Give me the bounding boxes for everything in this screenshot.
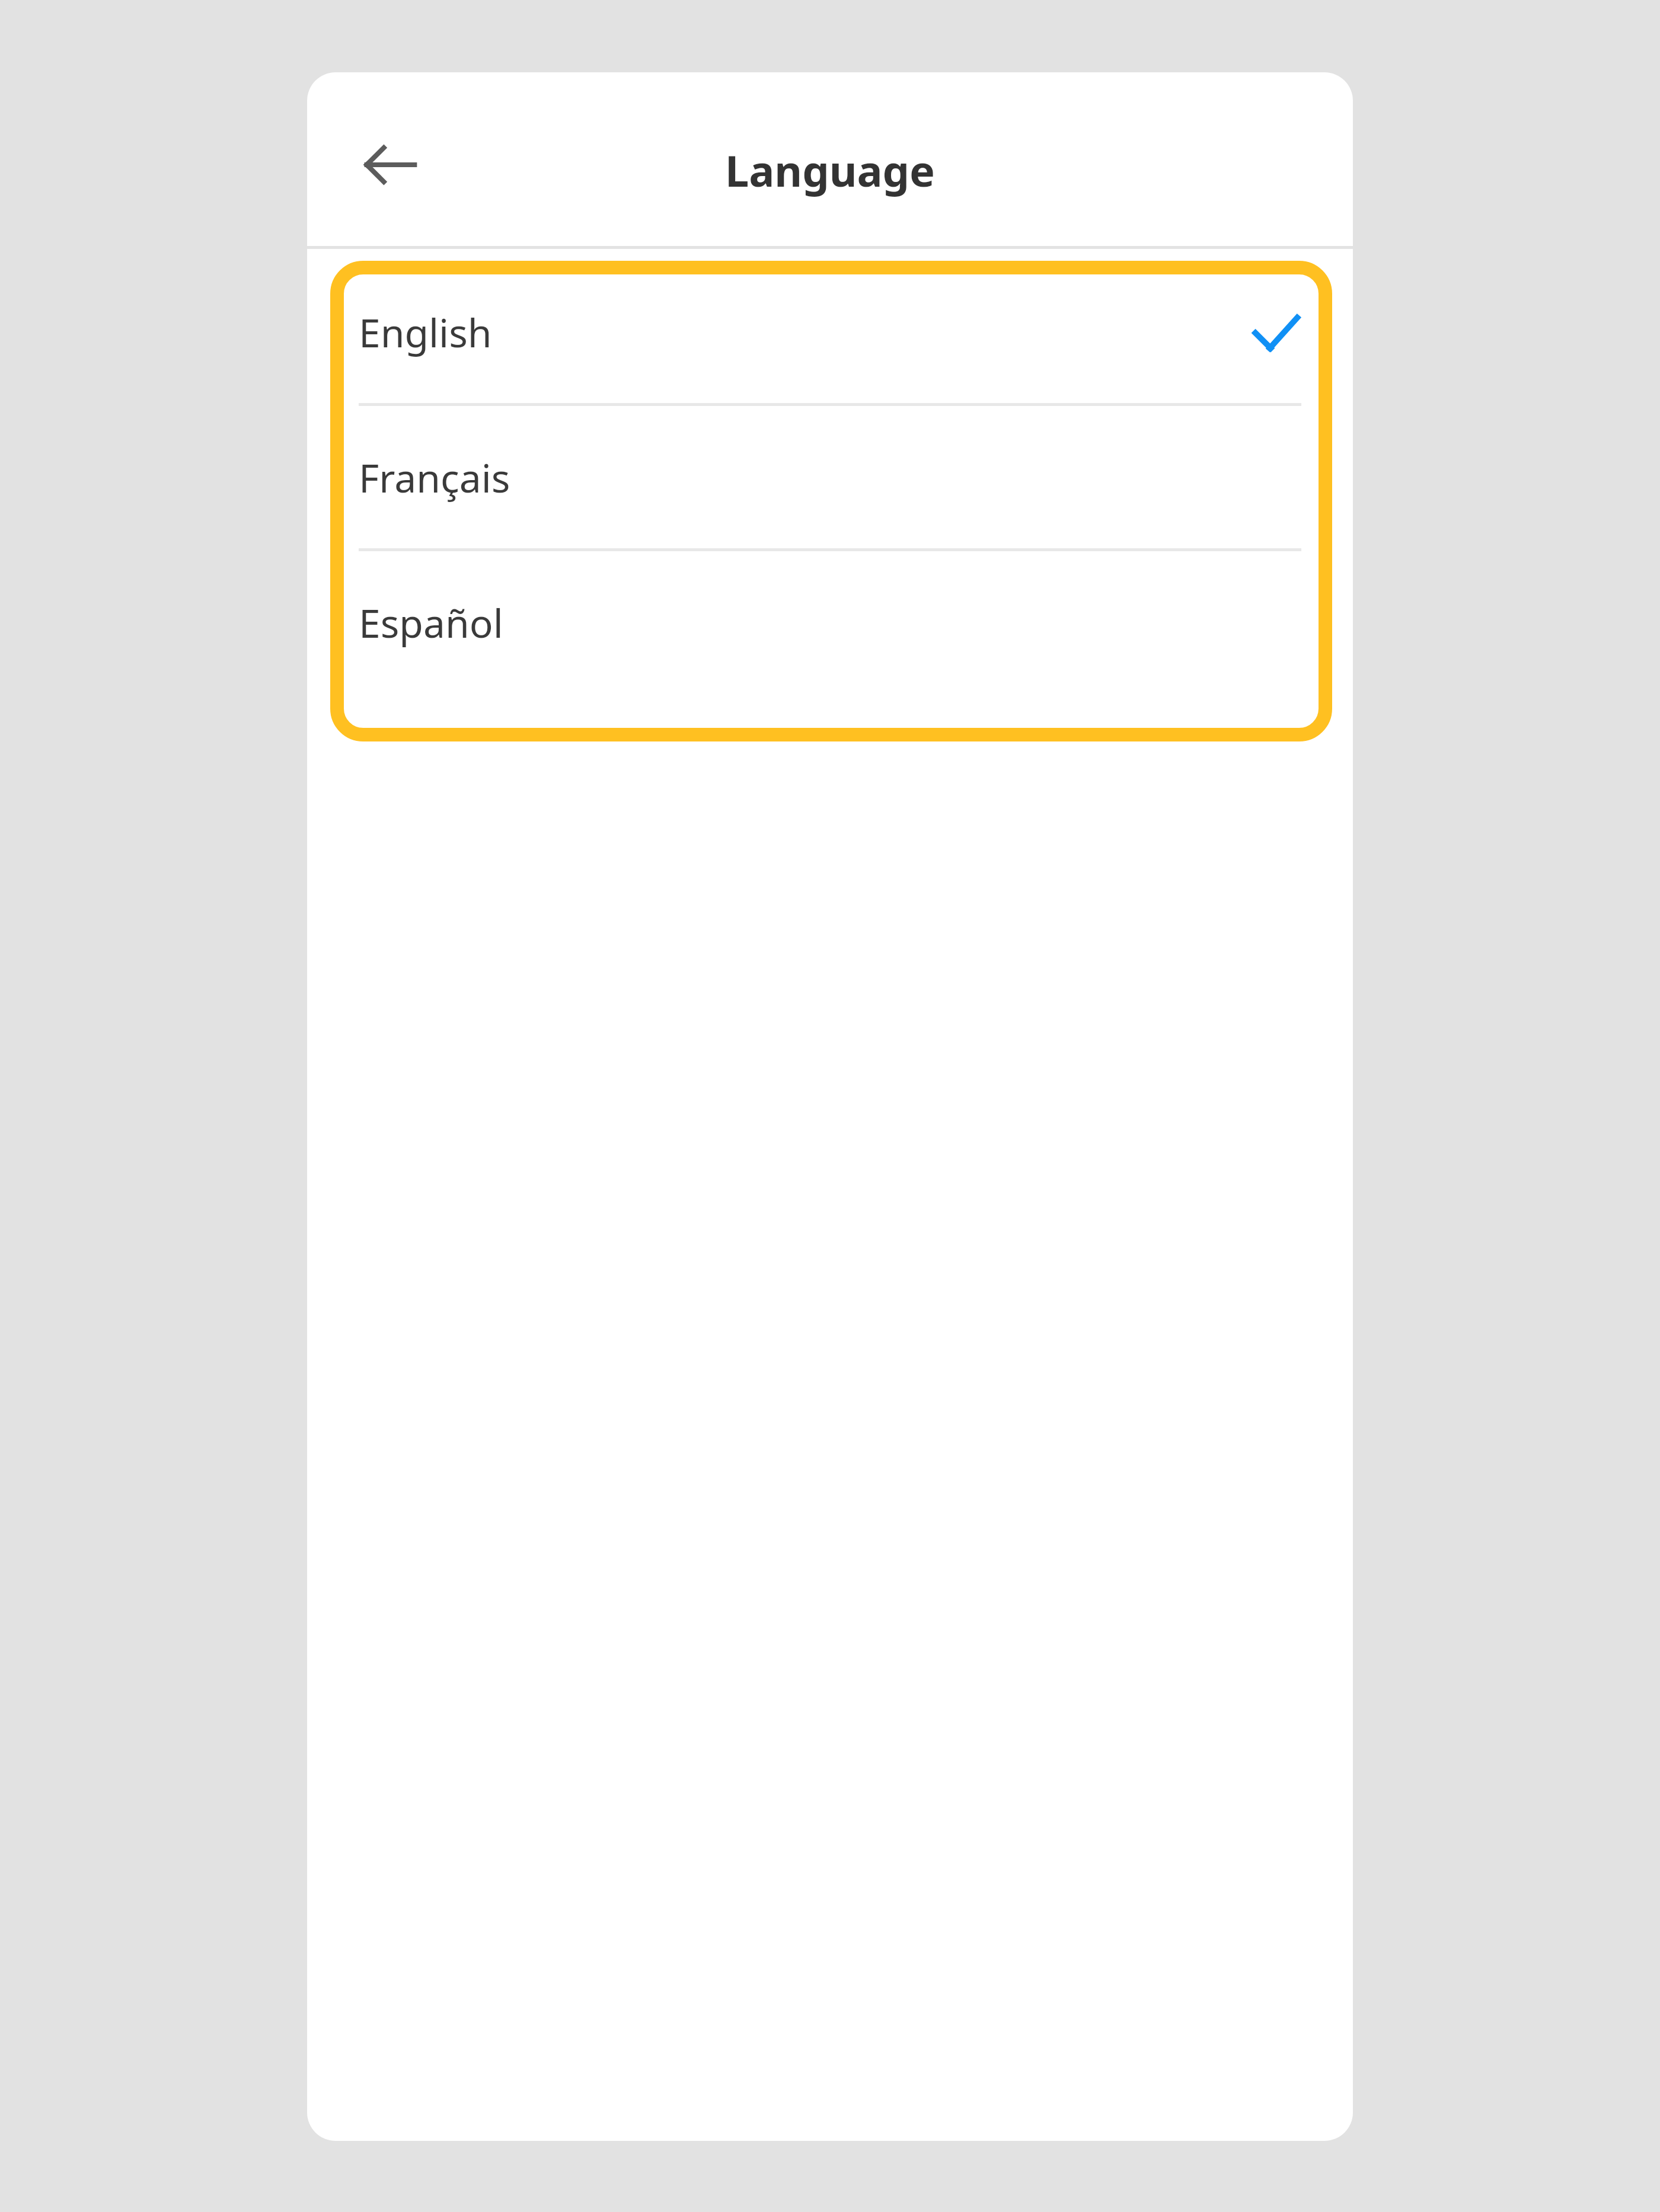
button[interactable]: Français bbox=[330, 406, 1332, 548]
staticText: English bbox=[359, 305, 492, 359]
button[interactable]: Español bbox=[330, 551, 1332, 693]
staticText: Language bbox=[307, 141, 1353, 199]
button[interactable]: English bbox=[330, 261, 1332, 403]
staticText: Français bbox=[359, 450, 510, 504]
button[interactable]: Back bbox=[343, 117, 438, 212]
staticText: Español bbox=[359, 596, 503, 649]
